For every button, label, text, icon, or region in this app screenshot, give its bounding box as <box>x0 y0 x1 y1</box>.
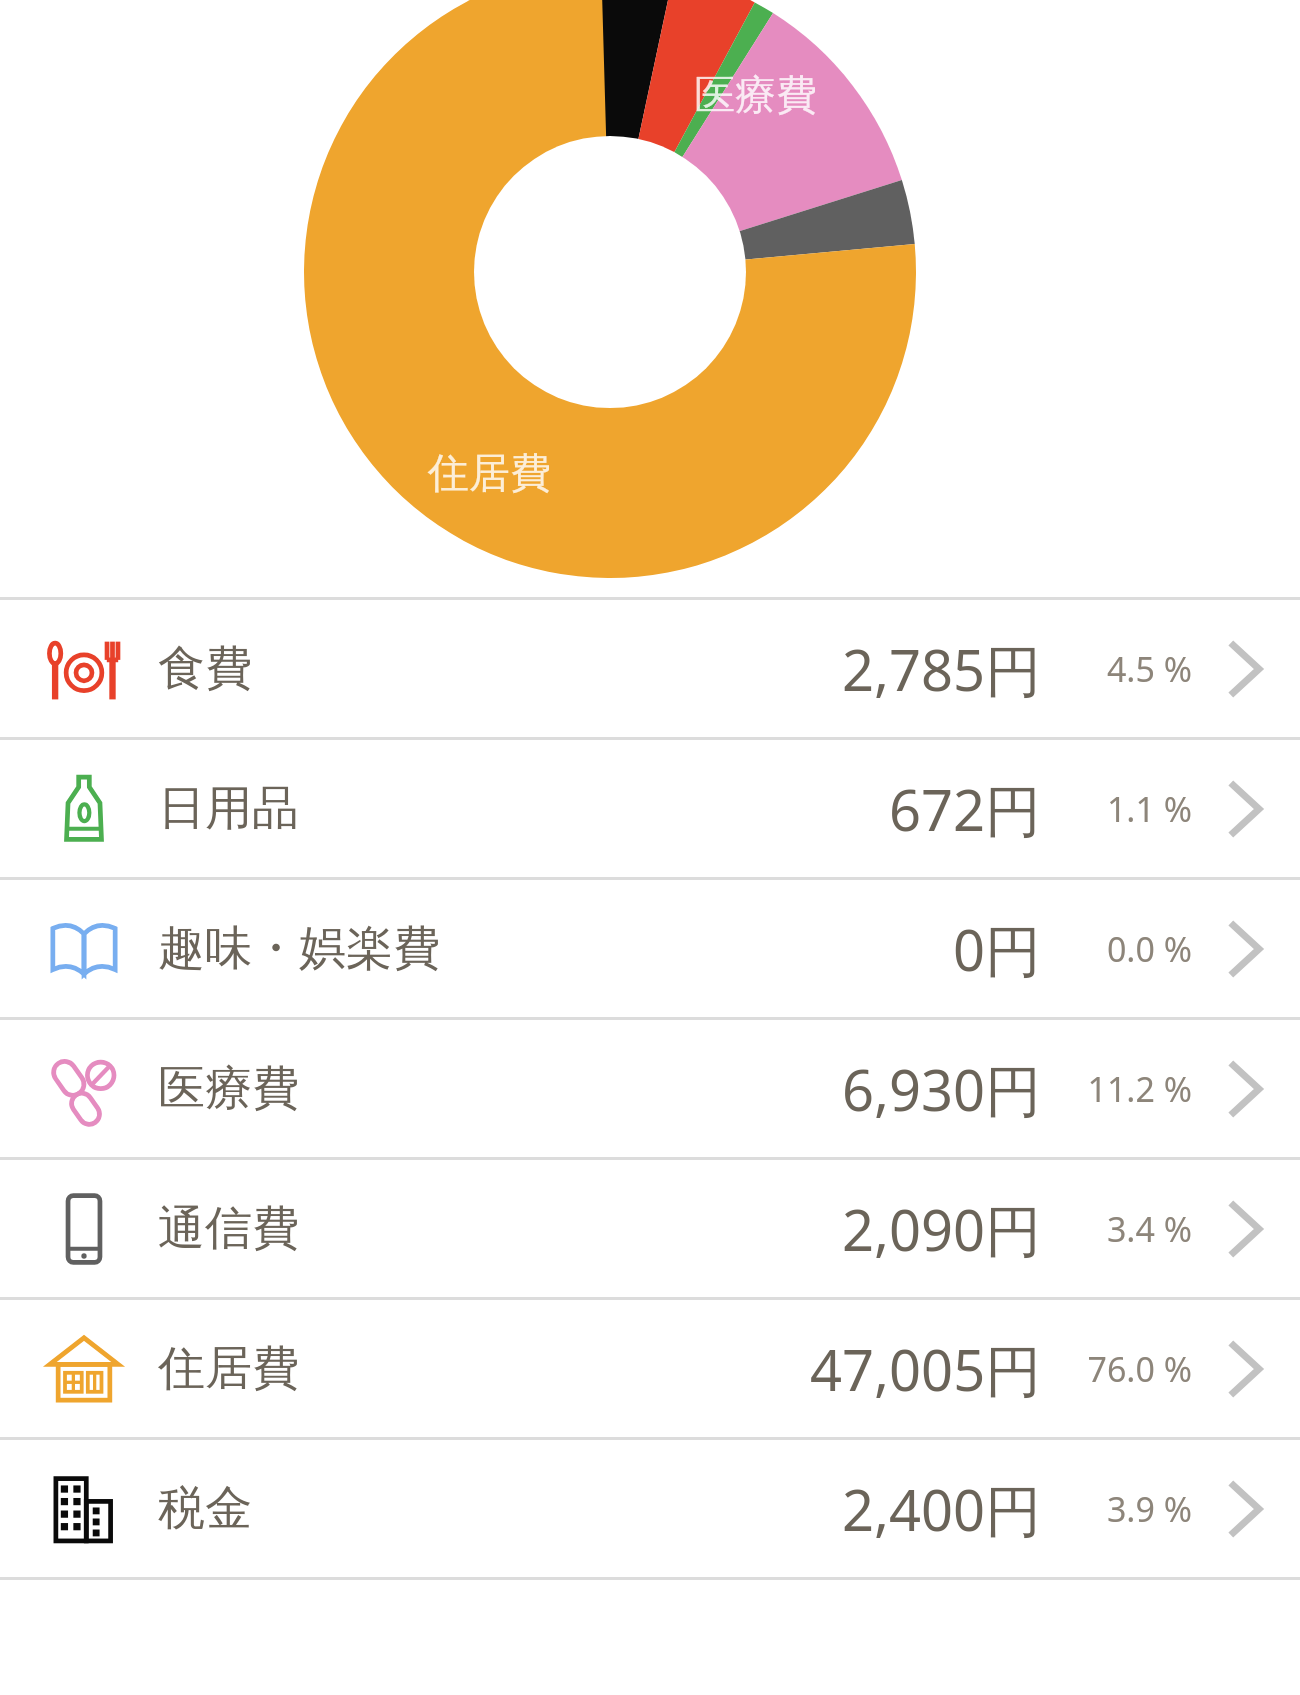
staticText: 2,090円 <box>842 1191 1042 1267</box>
staticText: 11.2 % <box>1087 1066 1192 1112</box>
button[interactable]: 住居費 <box>0 1300 1300 1437</box>
staticText: 通信費 <box>158 1199 299 1258</box>
button[interactable]: 趣味・娯楽費 <box>0 880 1300 1017</box>
staticText: 食費 <box>158 639 252 698</box>
staticText: 0円 <box>953 911 1042 987</box>
button[interactable]: 日用品 <box>0 740 1300 877</box>
other: 税金 の詳細 <box>1222 1478 1266 1540</box>
other: 医療費 の詳細 <box>1222 1058 1266 1120</box>
other: 趣味・娯楽費 の詳細 <box>1222 918 1266 980</box>
other: 住居費 の詳細 <box>1222 1338 1266 1400</box>
staticText: 3.4 % <box>1106 1206 1192 1252</box>
staticText: 医療費 <box>694 70 817 122</box>
staticText: 76.0 % <box>1087 1346 1192 1392</box>
staticText: 税金 <box>158 1479 252 1538</box>
button[interactable]: 税金 <box>0 1440 1300 1577</box>
other: 食費 の詳細 <box>1222 638 1266 700</box>
other: 日用品 の詳細 <box>1222 778 1266 840</box>
button[interactable]: 医療費 <box>0 1020 1300 1157</box>
staticText: 住居費 <box>158 1339 299 1398</box>
staticText: 4.5 % <box>1106 646 1192 692</box>
staticText: 0.0 % <box>1106 926 1192 972</box>
staticText: 6,930円 <box>842 1051 1042 1127</box>
staticText: 2,785円 <box>842 631 1042 707</box>
staticText: 3.9 % <box>1106 1486 1192 1532</box>
staticText: 47,005円 <box>810 1331 1042 1407</box>
button[interactable]: 食費 <box>0 600 1300 737</box>
staticText: 住居費 <box>428 448 551 500</box>
other: 通信費 の詳細 <box>1222 1198 1266 1260</box>
staticText: 日用品 <box>158 779 299 838</box>
staticText: 医療費 <box>158 1059 299 1118</box>
staticText: 2,400円 <box>842 1471 1042 1547</box>
staticText: 趣味・娯楽費 <box>158 919 440 978</box>
staticText: 1.1 % <box>1106 786 1192 832</box>
button[interactable]: 通信費 <box>0 1160 1300 1297</box>
staticText: 672円 <box>889 771 1042 847</box>
